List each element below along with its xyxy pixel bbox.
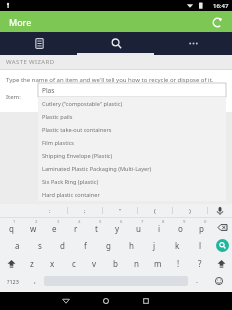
button[interactable]: .: [188, 272, 206, 290]
button[interactable]: n: [126, 254, 147, 272]
staticText: 8: [162, 219, 165, 225]
staticText: Plastic take-out containers: [42, 126, 112, 134]
staticText: e: [52, 223, 57, 234]
staticText: Shipping Envelope (Plastic): [42, 152, 113, 160]
button[interactable]: Film plastics: [38, 136, 226, 149]
button[interactable]: d: [51, 236, 74, 254]
staticText: f: [84, 240, 87, 251]
button[interactable]: m: [147, 254, 168, 272]
button[interactable]: 5: [86, 218, 107, 236]
staticText: ): [189, 207, 191, 215]
button[interactable]: z: [22, 254, 42, 272]
button[interactable]: ?: [189, 254, 210, 272]
staticText: 5: [99, 219, 102, 225]
button[interactable]: Shipping Envelope (Plastic): [38, 149, 226, 162]
button[interactable]: Refresh: [208, 13, 226, 31]
button[interactable]: c: [63, 254, 84, 272]
button[interactable]: (: [138, 204, 172, 217]
staticText: 9: [183, 219, 186, 225]
button[interactable]: g: [97, 236, 120, 254]
button[interactable]: 8: [149, 218, 170, 236]
staticText: o: [178, 223, 183, 234]
staticText: Type the name of an item and we'll tell …: [6, 76, 214, 84]
button[interactable]: j: [143, 236, 166, 254]
staticText: 4: [78, 219, 81, 225]
staticText: d: [60, 240, 65, 251]
button[interactable]: 6: [107, 218, 128, 236]
button[interactable]: 2: [22, 218, 44, 236]
staticText: 6: [120, 219, 123, 225]
staticText: u: [136, 223, 141, 234]
staticText: 16:47: [213, 2, 229, 10]
button[interactable]: k: [166, 236, 189, 254]
button[interactable]: ": [103, 204, 137, 217]
button[interactable]: 4: [65, 218, 86, 236]
staticText: s: [38, 240, 42, 251]
button[interactable]: Shift: [210, 254, 232, 272]
button[interactable]: ;: [68, 204, 102, 217]
staticText: Hard plastic container: [42, 191, 100, 199]
button[interactable]: More options: [155, 32, 232, 55]
staticText: (: [154, 207, 156, 215]
button[interactable]: a: [6, 236, 28, 254]
staticText: w: [30, 223, 37, 234]
staticText: Plastic pails: [42, 113, 73, 121]
button[interactable]: s: [28, 236, 51, 254]
staticText: b: [113, 258, 118, 269]
staticText: v: [92, 258, 97, 269]
button[interactable]: Recent apps: [137, 292, 155, 310]
staticText: 7: [141, 219, 144, 225]
button[interactable]: Emoji: [206, 272, 232, 290]
button[interactable]: :: [32, 204, 67, 217]
button[interactable]: Cutlery ("compostable" plastic): [38, 97, 226, 110]
staticText: z: [30, 258, 34, 269]
button[interactable]: Search: [78, 32, 155, 55]
button[interactable]: Voice input: [208, 204, 232, 217]
button[interactable]: 9: [170, 218, 191, 236]
button[interactable]: 3: [44, 218, 65, 236]
button[interactable]: ?123: [0, 272, 26, 290]
button[interactable]: Plastic pails: [38, 110, 226, 123]
button[interactable]: Six Pack Ring (plastic): [38, 175, 226, 188]
button[interactable]: v: [84, 254, 105, 272]
staticText: Item:: [6, 93, 38, 101]
button[interactable]: Hard plastic container: [38, 188, 226, 201]
button[interactable]: !: [168, 254, 189, 272]
staticText: n: [134, 258, 139, 269]
button[interactable]: h: [120, 236, 143, 254]
staticText: Laminated Plastic Packaging (Multi-Layer…: [42, 165, 152, 173]
staticText: ;: [84, 207, 86, 215]
staticText: More: [9, 16, 32, 28]
button[interactable]: x: [42, 254, 63, 272]
button[interactable]: l: [189, 236, 212, 254]
staticText: 2: [35, 219, 38, 225]
button[interactable]: ,: [26, 272, 44, 290]
staticText: ?: [198, 258, 202, 269]
button[interactable]: Cards: [0, 32, 78, 55]
staticText: h: [129, 240, 134, 251]
staticText: x: [50, 258, 55, 269]
button[interactable]: Plas: [38, 90, 226, 104]
button[interactable]: Backspace: [212, 218, 232, 236]
staticText: c: [72, 258, 76, 269]
button[interactable]: Home: [97, 292, 115, 310]
staticText: !: [177, 258, 180, 269]
button[interactable]: ): [173, 204, 207, 217]
staticText: 3: [57, 219, 60, 225]
button[interactable]: f: [74, 236, 97, 254]
button[interactable]: Plastic take-out containers: [38, 123, 226, 136]
button[interactable]: 1: [0, 218, 22, 236]
staticText: Six Pack Ring (plastic): [42, 178, 99, 186]
button[interactable]: Search: [212, 236, 232, 254]
staticText: r: [74, 223, 78, 234]
button[interactable]: 0: [191, 218, 212, 236]
staticText: Cutlery ("compostable" plastic): [42, 100, 123, 108]
button[interactable]: 7: [128, 218, 149, 236]
button[interactable]: Shift: [0, 254, 22, 272]
staticText: ,: [34, 276, 36, 286]
button[interactable]: Back: [57, 292, 75, 310]
staticText: p: [199, 223, 204, 234]
button[interactable]: Laminated Plastic Packaging (Multi-Layer…: [38, 162, 226, 175]
button[interactable]: b: [105, 254, 126, 272]
